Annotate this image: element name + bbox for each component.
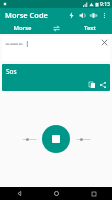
button[interactable]: Text	[67, 22, 112, 34]
button[interactable]: Vibrate	[88, 8, 99, 22]
button[interactable]: Clear	[100, 38, 109, 47]
button[interactable]: Back	[0, 187, 38, 200]
button[interactable]: Volume	[70, 132, 96, 146]
button[interactable]: Recent apps	[75, 187, 112, 200]
staticText: Sos	[6, 67, 17, 76]
button[interactable]: Swap	[45, 22, 67, 34]
button[interactable]: Sound	[77, 8, 88, 22]
staticText: Morse Code	[5, 10, 48, 20]
staticText: Morse	[13, 24, 32, 32]
button[interactable]: More options	[99, 8, 110, 22]
staticText: Text	[84, 24, 96, 32]
button[interactable]: Speed	[16, 132, 42, 146]
button[interactable]: Copy	[86, 79, 97, 90]
staticText: 9:13	[100, 1, 110, 8]
button[interactable]: Stop	[42, 125, 70, 153]
button[interactable]: Share	[97, 79, 108, 90]
button[interactable]: Flashlight	[66, 8, 77, 22]
button[interactable]: Home	[38, 187, 75, 200]
button[interactable]: Morse	[0, 22, 45, 34]
